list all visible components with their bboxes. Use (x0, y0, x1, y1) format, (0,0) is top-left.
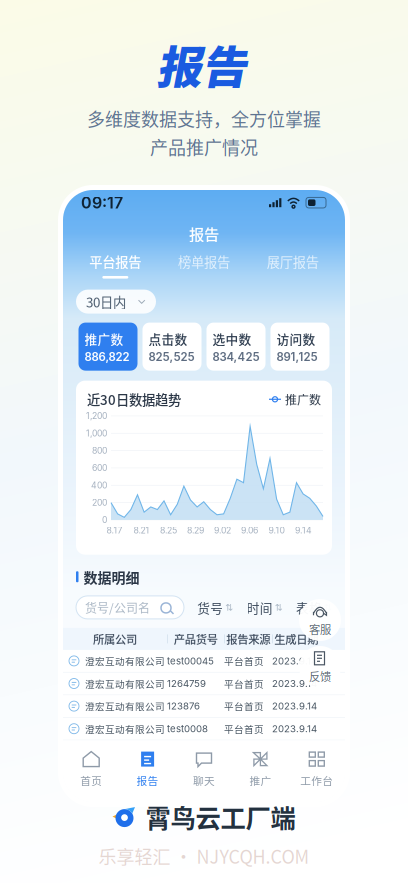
staticText: 乐享轻汇 · NJYCQH.COM (98, 843, 309, 869)
staticText: 9.14 (295, 525, 312, 536)
button[interactable]: 货号 (197, 598, 233, 616)
button[interactable]: 报告 (189, 223, 219, 245)
button[interactable]: 30日内 (76, 290, 156, 314)
staticText: 886,822 (84, 350, 129, 364)
staticText: 货号/公司名 (85, 599, 150, 616)
staticText: 多维度数据支持，全方位掌握 (87, 105, 321, 132)
staticText: 平台首页 (224, 654, 264, 668)
staticText: 报告 (189, 223, 219, 245)
staticText: 1264759 (167, 678, 206, 689)
button[interactable]: 工作台 (289, 744, 345, 793)
staticText: 所属公司 (93, 631, 137, 647)
staticText: 货号 (197, 598, 223, 616)
staticText: 报告 (137, 773, 159, 788)
staticText: ⇅ (324, 602, 332, 613)
staticText: 报告来源 (226, 631, 270, 647)
staticText: 平台首页 (224, 722, 264, 736)
button[interactable]: 澄宏互动有限公司 (63, 672, 345, 695)
staticText: 产品货号 (174, 631, 218, 647)
staticText: 澄宏互动有限公司 (85, 654, 165, 668)
staticText: 推广 (249, 773, 271, 788)
staticText: 近30日数据趋势 (87, 390, 181, 409)
button[interactable]: 表格 (296, 598, 332, 616)
staticText: 平台报告 (89, 252, 141, 271)
staticText: 1,000 (86, 428, 107, 438)
staticText: ⇅ (225, 602, 233, 613)
button[interactable]: 反馈 (299, 646, 341, 688)
staticText: 123876 (167, 700, 200, 712)
staticText: 8.21 (133, 525, 149, 536)
staticText: 榜单报告 (178, 252, 230, 271)
staticText: 400 (91, 480, 107, 490)
button[interactable]: 点击数 (142, 323, 201, 371)
staticText: 推广数 (285, 391, 321, 408)
staticText: ⌄ (137, 292, 146, 307)
button[interactable]: 首页 (63, 744, 119, 793)
staticText: 891,125 (276, 350, 317, 364)
staticText: 825,525 (148, 350, 194, 364)
staticText: 选中数 (212, 330, 251, 348)
staticText: 访问数 (276, 330, 315, 348)
button[interactable]: 榜单报告 (178, 252, 230, 271)
button[interactable]: 澄宏互动有限公司 (63, 650, 345, 672)
button[interactable]: 客服 (299, 599, 341, 641)
staticText: 600 (92, 463, 107, 473)
button[interactable]: 访问数 (270, 323, 329, 371)
staticText: test00045 (167, 655, 214, 667)
staticText: ⇅ (275, 602, 283, 613)
button[interactable]: 货号/公司名 (76, 596, 184, 619)
staticText: 生成日期 (274, 631, 318, 647)
staticText: 30日内 (86, 292, 126, 311)
staticText: 平台首页 (224, 677, 264, 690)
staticText: 客服 (309, 621, 331, 637)
staticText: 数据明细 (83, 567, 139, 587)
staticText: 平台首页 (224, 699, 264, 713)
staticText: 800 (92, 445, 107, 456)
button[interactable]: 澄宏互动有限公司 (63, 695, 345, 718)
staticText: 报告 (159, 40, 249, 93)
staticText: 反馈 (309, 668, 331, 684)
staticText: 2023.9.14 (272, 655, 317, 667)
staticText: 澄宏互动有限公司 (85, 699, 165, 713)
staticText: 1,200 (86, 411, 107, 421)
staticText: 9.06 (241, 525, 258, 536)
button[interactable]: 推广数 (78, 323, 137, 371)
staticText: 09:17 (81, 193, 123, 212)
staticText: 2023.9.14 (272, 678, 317, 689)
button[interactable]: 展厅报告 (267, 252, 319, 271)
button[interactable]: 聊天 (176, 744, 232, 793)
staticText: 表格 (296, 598, 322, 616)
button[interactable]: 选中数 (206, 323, 265, 371)
staticText: 0 (102, 515, 107, 525)
staticText: 点击数 (148, 330, 187, 348)
staticText: 澄宏互动有限公司 (85, 677, 165, 690)
staticText: 9.02 (214, 525, 231, 536)
button[interactable]: 报告 (119, 744, 176, 793)
staticText: 2023.9.14 (272, 700, 317, 712)
staticText: test0008 (167, 723, 208, 734)
staticText: 834,425 (212, 350, 259, 364)
staticText: 澄宏互动有限公司 (85, 722, 165, 736)
button[interactable]: 澄宏互动有限公司 (63, 718, 345, 740)
staticText: 展厅报告 (267, 252, 319, 271)
staticText: 产品推广情况 (150, 134, 258, 160)
staticText: 2023.9.14 (272, 723, 317, 734)
staticText: 推广数 (84, 330, 123, 348)
staticText: 霄鸟云工厂端 (145, 798, 295, 835)
staticText: 工作台 (300, 773, 333, 788)
staticText: 200 (92, 497, 107, 508)
staticText: 8.25 (160, 525, 177, 536)
staticText: 首页 (80, 773, 102, 788)
staticText: 8.29 (187, 525, 204, 536)
staticText: 9.10 (268, 525, 284, 536)
staticText: 8.17 (106, 525, 122, 536)
button[interactable]: 平台报告 (89, 252, 141, 271)
button[interactable]: 推广 (232, 744, 289, 793)
staticText: 时间 (247, 598, 273, 616)
staticText: 聊天 (193, 773, 215, 788)
button[interactable]: 时间 (247, 598, 283, 616)
